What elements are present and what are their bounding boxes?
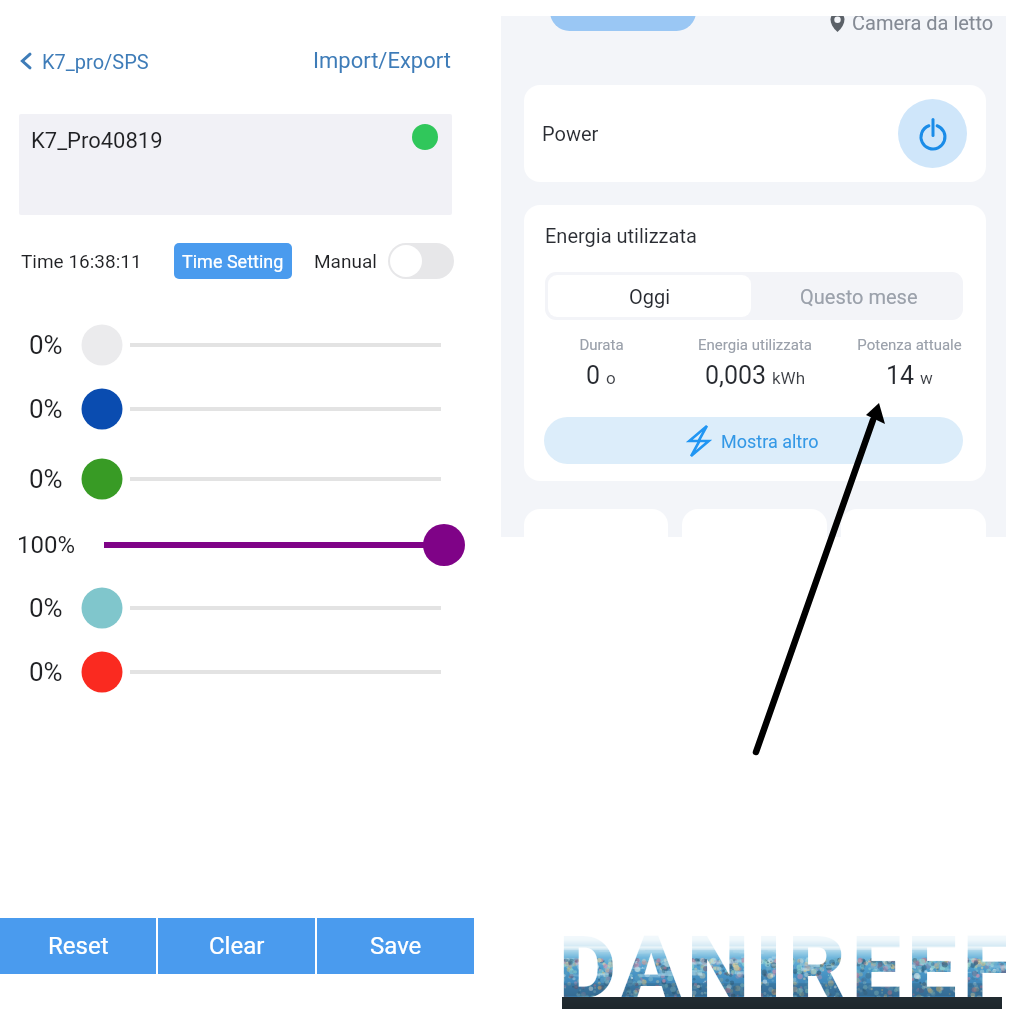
staticText: 0% <box>29 593 63 623</box>
staticText: Manual <box>314 250 377 272</box>
staticText: 0% <box>29 394 63 424</box>
staticText: w <box>920 368 933 388</box>
staticText: Save <box>370 932 422 960</box>
staticText: Oggi <box>629 285 671 308</box>
button[interactable]: 0% <box>0 454 474 504</box>
staticText: Potenza attuale <box>857 336 962 354</box>
button[interactable]: Oggi <box>548 275 751 317</box>
staticText: 0% <box>29 464 63 494</box>
button[interactable]: Mostra altro <box>544 417 963 464</box>
staticText: Reset <box>48 932 109 960</box>
staticText: kWh <box>772 368 806 388</box>
staticText: 100% <box>17 531 76 559</box>
button[interactable]: 0% <box>0 384 474 434</box>
staticText: K7_pro/SPS <box>42 50 149 73</box>
button[interactable]: Import/Export <box>313 42 451 80</box>
staticText: Time 16:38:11 <box>21 250 142 272</box>
button[interactable]: K7_pro/SPS <box>12 42 153 80</box>
staticText: 0% <box>29 330 63 360</box>
staticText: 0 <box>586 361 601 390</box>
staticText: Energia utilizzata <box>698 336 812 354</box>
button[interactable]: 0% <box>0 320 474 370</box>
button[interactable]: 0% <box>0 583 474 633</box>
staticText: 0,003 <box>705 361 767 390</box>
staticText: 0% <box>29 657 63 687</box>
staticText: Clear <box>209 932 265 960</box>
button[interactable]: Power <box>898 99 967 168</box>
staticText: o <box>606 368 616 388</box>
button[interactable]: Camera da letto <box>828 16 994 36</box>
button[interactable]: K7_Pro40819 <box>19 114 452 215</box>
staticText: Durata <box>579 336 624 354</box>
staticText: Time Setting <box>182 251 284 272</box>
button[interactable]: Reset <box>0 918 156 974</box>
staticText: Import/Export <box>313 48 451 74</box>
button[interactable]: 0% <box>0 647 474 697</box>
staticText: Power <box>542 122 599 145</box>
button[interactable]: Power <box>524 85 986 182</box>
staticText: K7_Pro40819 <box>31 128 163 154</box>
button[interactable] <box>841 509 986 537</box>
staticText: Mostra altro <box>721 431 819 452</box>
button[interactable]: Clear <box>158 918 315 974</box>
button[interactable]: Time Setting <box>174 243 292 279</box>
button[interactable]: Save <box>317 918 474 974</box>
staticText: Energia utilizzata <box>545 224 697 247</box>
staticText: Questo mese <box>800 285 918 308</box>
button[interactable]: Questo mese <box>754 272 963 320</box>
staticText: Camera da letto <box>852 16 994 34</box>
button[interactable]: 100% <box>0 520 474 570</box>
staticText: 14 <box>886 361 915 390</box>
button[interactable]: Manual toggle <box>388 243 454 279</box>
